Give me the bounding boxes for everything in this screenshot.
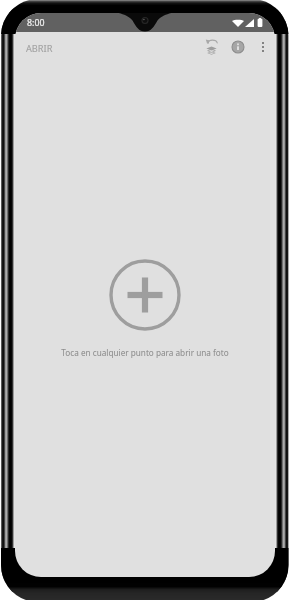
button[interactable]: Abrir una foto bbox=[15, 61, 275, 577]
button[interactable]: Más opciones bbox=[251, 32, 274, 61]
button[interactable]: Información bbox=[224, 32, 251, 61]
staticText: 8:00 bbox=[27, 17, 45, 29]
staticText: Toca en cualquier punto para abrir una f… bbox=[61, 347, 229, 358]
staticText: ABRIR bbox=[26, 42, 53, 55]
button[interactable]: Cambiar capas bbox=[198, 32, 224, 61]
